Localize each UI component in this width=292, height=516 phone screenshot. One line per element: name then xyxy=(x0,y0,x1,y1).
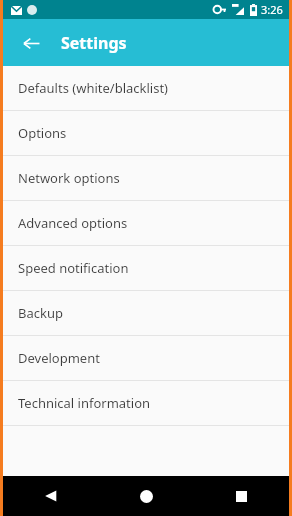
button[interactable]: Development xyxy=(3,336,289,380)
staticText: Advanced options xyxy=(18,214,128,232)
button[interactable]: Back xyxy=(3,476,99,516)
button[interactable]: Speed notification xyxy=(3,246,289,290)
staticText: Backup xyxy=(18,304,63,322)
button[interactable]: Defaults (white/blacklist) xyxy=(3,66,289,110)
staticText: Development xyxy=(18,349,100,367)
staticText: Settings xyxy=(61,32,127,54)
staticText: 3:26 xyxy=(261,2,283,17)
button[interactable]: Network options xyxy=(3,156,289,200)
staticText: Options xyxy=(18,124,67,142)
button[interactable]: Advanced options xyxy=(3,201,289,245)
staticText: Speed notification xyxy=(18,259,129,277)
button[interactable]: Home xyxy=(99,476,194,516)
staticText: Network options xyxy=(18,169,120,187)
button[interactable]: Back xyxy=(13,25,49,61)
staticText: Defaults (white/blacklist) xyxy=(18,79,168,97)
button[interactable]: Backup xyxy=(3,291,289,335)
button[interactable]: Recent apps xyxy=(194,476,289,516)
button[interactable]: Technical information xyxy=(3,381,289,425)
staticText: Technical information xyxy=(18,394,151,412)
button[interactable]: Options xyxy=(3,111,289,155)
